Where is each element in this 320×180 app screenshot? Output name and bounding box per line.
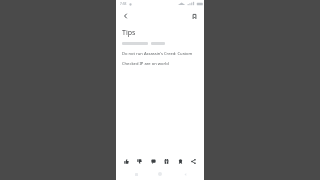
staticText: Tips bbox=[122, 28, 136, 38]
button[interactable]: Home bbox=[155, 169, 165, 179]
staticText: Checked IP are on world bbox=[122, 61, 169, 67]
button[interactable]: Gift bbox=[161, 156, 172, 167]
button[interactable]: Award bbox=[175, 156, 186, 167]
button[interactable]: Like bbox=[121, 156, 132, 167]
button[interactable]: Comment bbox=[148, 156, 159, 167]
button[interactable]: Recents bbox=[131, 169, 141, 179]
button[interactable]: Back bbox=[120, 10, 132, 22]
button[interactable]: Share bbox=[188, 156, 199, 167]
button[interactable]: Save bbox=[188, 10, 200, 22]
staticText: Do not run Assassin's Creed: Custom Stag… bbox=[122, 51, 198, 57]
staticText: 7:58 bbox=[120, 2, 127, 6]
button[interactable]: Dislike bbox=[134, 156, 145, 167]
